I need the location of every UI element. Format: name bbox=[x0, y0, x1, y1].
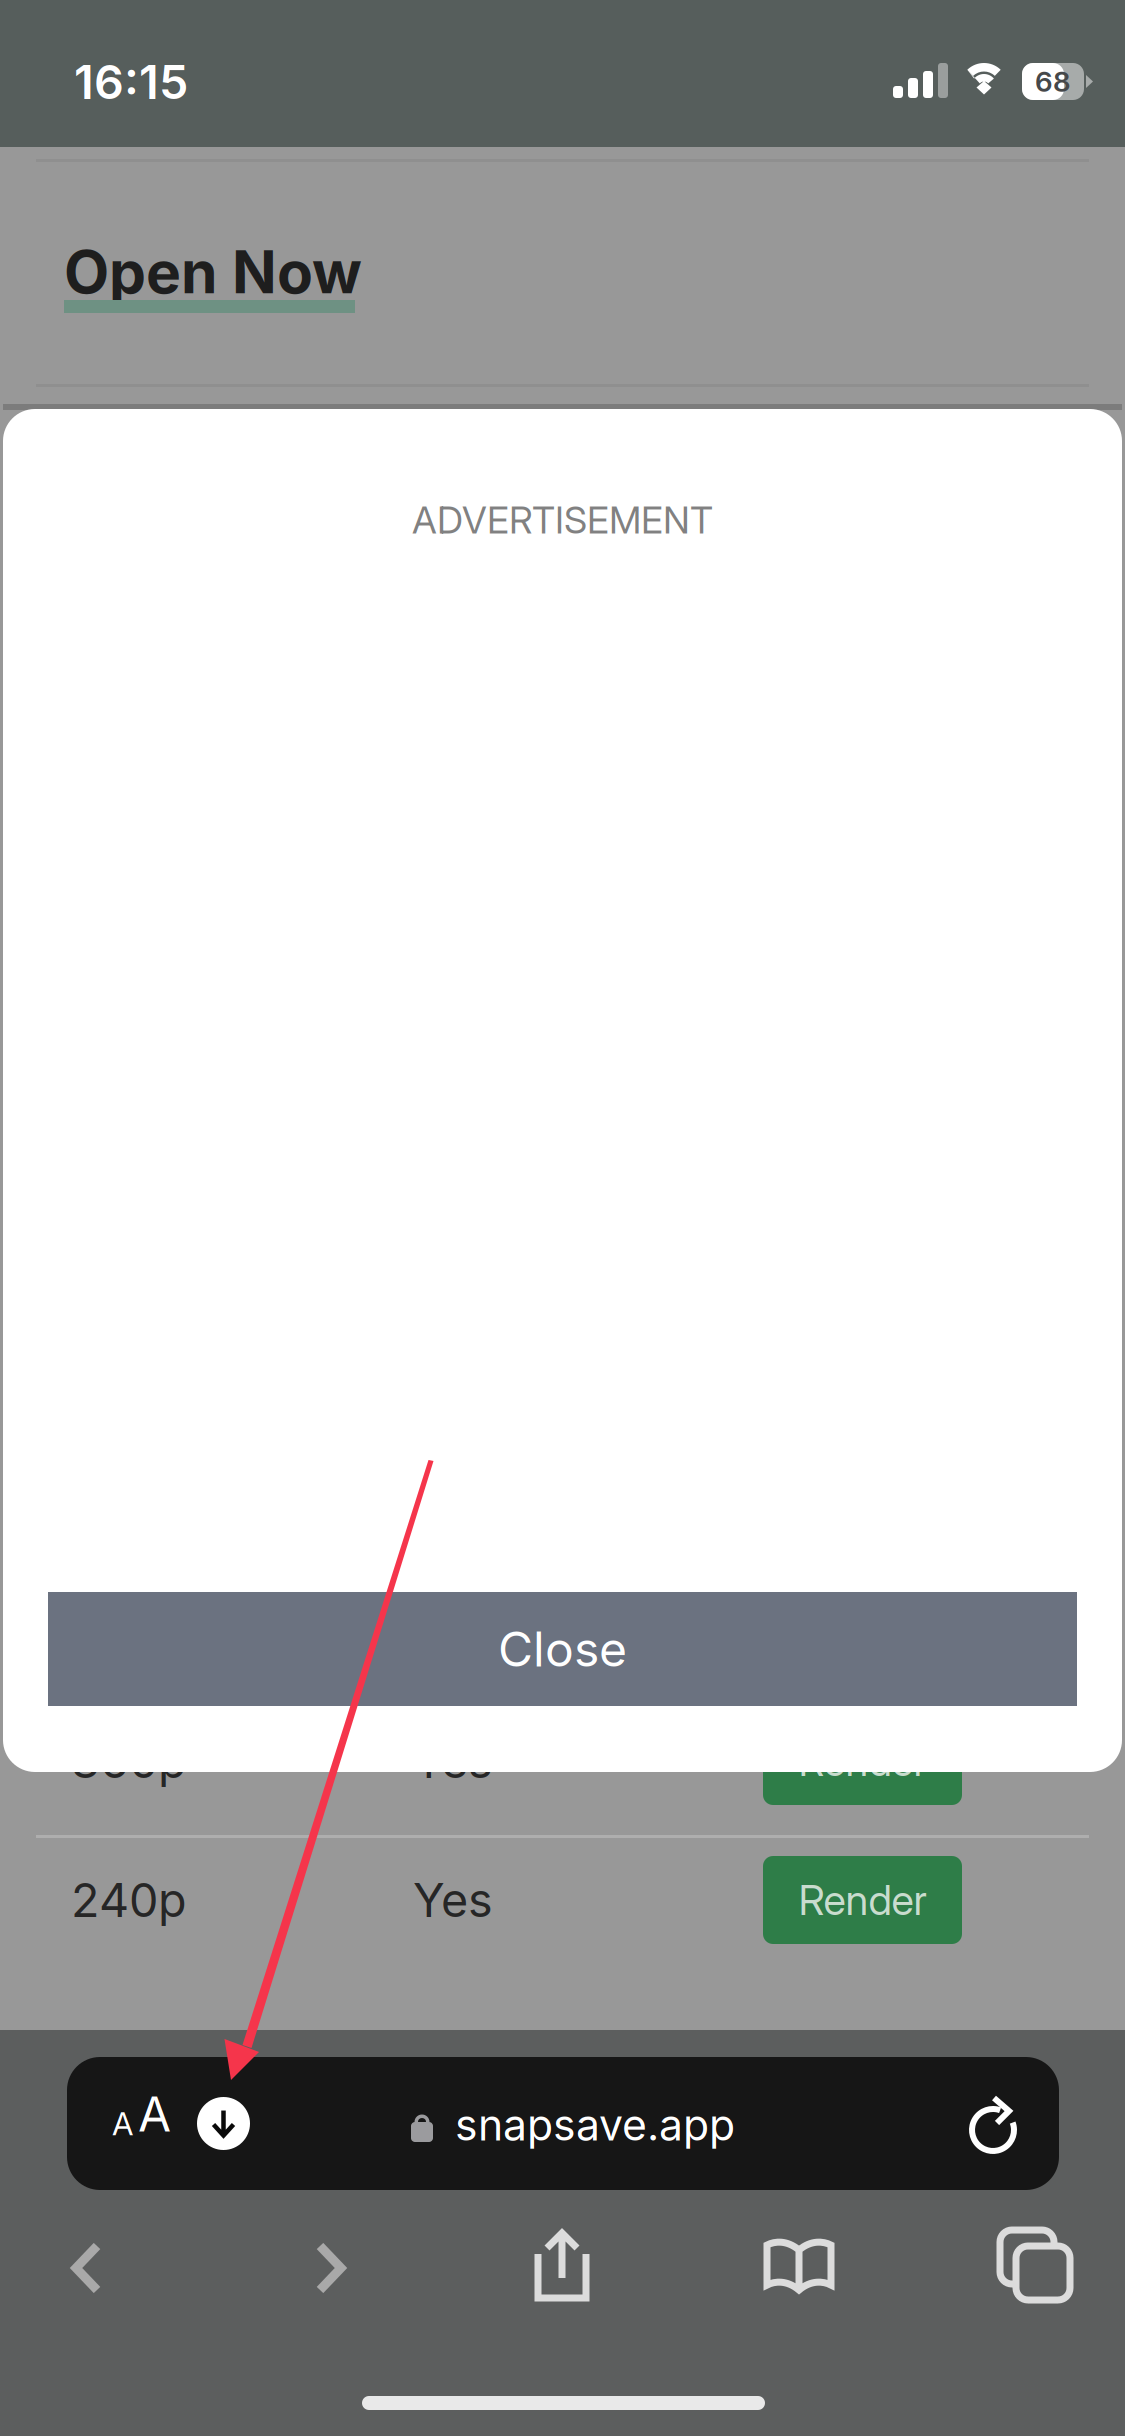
button[interactable]: Reload bbox=[971, 2096, 1021, 2156]
staticText: 16:15 bbox=[74, 54, 188, 110]
staticText: Render bbox=[798, 1736, 926, 1786]
staticText: 240p bbox=[71, 1872, 187, 1928]
button[interactable]: Share bbox=[492, 2216, 632, 2316]
staticText: Yes bbox=[413, 1733, 493, 1789]
button[interactable]: Close bbox=[48, 1592, 1077, 1706]
staticText: snapsave.app bbox=[455, 2099, 735, 2151]
button[interactable]: Back bbox=[16, 2218, 157, 2318]
staticText: Yes bbox=[413, 1872, 493, 1928]
button[interactable]: snapsave.app bbox=[411, 2100, 831, 2150]
staticText: A bbox=[112, 2104, 133, 2143]
staticText: 360p bbox=[71, 1733, 187, 1789]
button[interactable]: Downloads bbox=[197, 2097, 250, 2150]
staticText: Close bbox=[498, 1620, 627, 1678]
button[interactable]: Text size bbox=[112, 2105, 174, 2143]
staticText: ADVERTISEMENT bbox=[412, 497, 713, 543]
button[interactable]: Render bbox=[763, 1717, 962, 1805]
staticText: A bbox=[138, 2085, 171, 2143]
button[interactable]: Tabs bbox=[965, 2215, 1105, 2315]
staticText: 68 bbox=[1035, 65, 1071, 98]
button[interactable]: Render bbox=[763, 1856, 962, 1944]
button[interactable]: Forward bbox=[260, 2218, 401, 2318]
staticText: Open Now bbox=[64, 236, 362, 307]
staticText: Render bbox=[798, 1875, 926, 1925]
button[interactable]: Bookmarks bbox=[729, 2217, 869, 2317]
